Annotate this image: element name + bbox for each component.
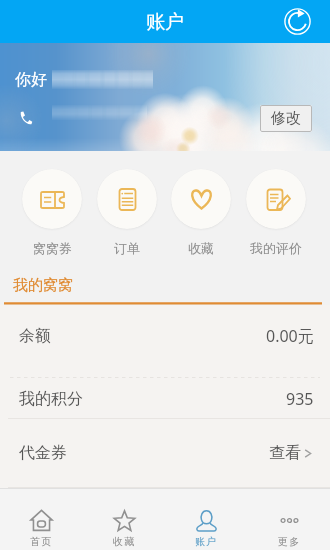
staticText: 首页 [30,535,53,548]
button[interactable]: 收藏 [164,169,238,255]
staticText: 余额 [19,326,51,346]
button[interactable]: 订单 [90,169,164,255]
staticText: 935 [286,388,314,410]
button[interactable]: 我的评价 [239,169,313,255]
button[interactable]: 收藏 [83,489,165,550]
staticText: 我的窝窝 [13,276,73,295]
staticText: 账户 [146,10,184,34]
staticText: 窝窝券 [33,240,72,255]
button[interactable]: 余额 [0,305,330,367]
staticText: 修改 [271,109,301,128]
button[interactable]: 账户 [165,489,247,550]
staticText: 0.00元 [266,325,314,347]
staticText: 你好 [15,70,47,90]
button[interactable]: 更多 [248,489,330,550]
staticText: 订单 [114,240,140,255]
staticText: 账户 [195,535,218,548]
button[interactable]: 修改 [260,105,312,132]
staticText: 我的评价 [250,240,302,255]
staticText: 查看 [269,443,301,463]
staticText: 代金券 [19,443,67,463]
button[interactable]: 窝窝券 [15,169,89,255]
staticText: 更多 [278,535,301,548]
button[interactable]: 我的积分 [0,378,330,419]
button[interactable]: 代金券 [0,419,330,487]
button[interactable]: Refresh [284,8,311,35]
staticText: 收藏 [188,240,214,255]
staticText: 我的积分 [19,389,83,409]
button[interactable]: 首页 [0,489,82,550]
staticText: 收藏 [113,535,136,548]
